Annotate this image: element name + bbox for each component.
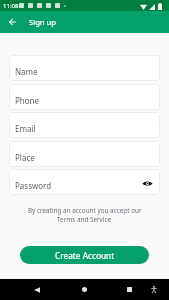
button[interactable]: Phone (9, 84, 160, 110)
button[interactable]: Create Account (20, 246, 149, 264)
button[interactable]: Recent apps (119, 279, 140, 300)
staticText: 11:08 (3, 2, 19, 10)
button[interactable]: Password (9, 169, 160, 195)
staticText: Create Account (55, 250, 115, 261)
staticText: Email (15, 123, 36, 134)
button[interactable]: Home (74, 279, 95, 300)
staticText: Phone (15, 95, 40, 106)
other: Show password (142, 180, 153, 187)
staticText: Name (15, 66, 38, 77)
staticText: By creating an account you accept our (28, 206, 142, 215)
staticText: Sign up (29, 17, 56, 27)
staticText: Place (15, 152, 35, 163)
button[interactable]: Accessibility (143, 279, 164, 300)
button[interactable]: Name (9, 55, 160, 81)
staticText: Terms and Service (57, 215, 112, 224)
button[interactable]: Place (9, 141, 160, 167)
button[interactable]: Back (26, 279, 47, 300)
button[interactable]: Back (4, 14, 20, 30)
button[interactable]: Email (9, 112, 160, 138)
staticText: Password (15, 180, 52, 191)
